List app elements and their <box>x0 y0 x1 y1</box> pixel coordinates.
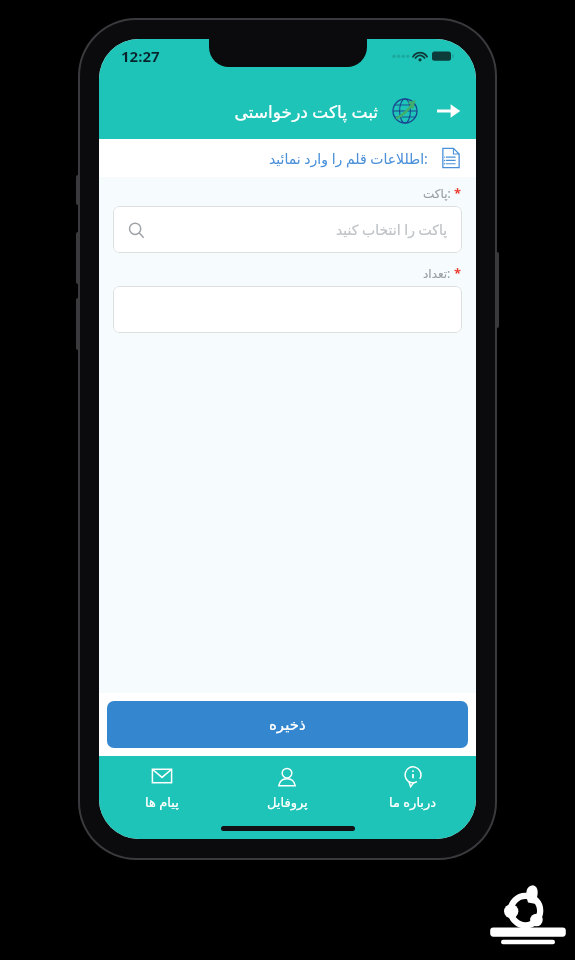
button[interactable]: درباره ما <box>350 756 476 818</box>
button[interactable]: Back <box>430 93 466 129</box>
button[interactable]: ذخیره <box>107 701 468 748</box>
staticText: تعداد: <box>423 265 451 281</box>
staticText: پاکت: <box>423 185 451 201</box>
staticText: اطللاعات قلم را وارد نمائید: <box>269 149 428 168</box>
staticText: درباره ما <box>389 793 437 811</box>
staticText: ثبت پاکت درخواستی <box>234 100 378 123</box>
staticText: * <box>454 184 462 202</box>
staticText: * <box>454 264 462 282</box>
button[interactable] <box>113 286 462 333</box>
staticText: پروفایل <box>267 795 308 810</box>
button[interactable]: Logo <box>388 94 422 128</box>
staticText: 12:27 <box>121 46 160 66</box>
staticText: پاکت را انتخاب کنید <box>336 220 448 239</box>
staticText: ذخیره <box>269 716 306 733</box>
staticText: پیام ها <box>145 793 179 811</box>
button[interactable]: پروفایل <box>224 756 350 818</box>
button[interactable]: پیام ها <box>99 756 224 818</box>
button[interactable]: پاکت را انتخاب کنید <box>113 206 462 253</box>
